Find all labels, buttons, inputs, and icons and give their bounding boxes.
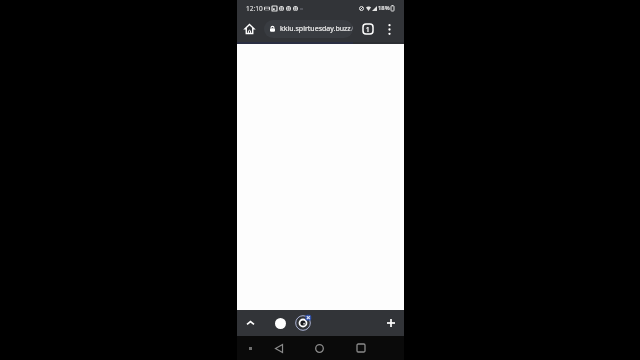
staticText: 12:10	[246, 4, 263, 13]
button[interactable]: Back	[269, 338, 289, 358]
staticText: 18%	[378, 4, 390, 12]
button[interactable]: Home	[239, 19, 259, 39]
button[interactable]: Recent apps	[351, 338, 371, 358]
button[interactable]: kkiu.spirtuesday.buzz	[264, 20, 353, 38]
button[interactable]: Home	[309, 338, 329, 358]
staticText: 1	[366, 25, 370, 33]
button[interactable]: New tab	[381, 313, 401, 333]
button[interactable]: Expand toolbar	[240, 313, 260, 333]
staticText: /t	[351, 24, 353, 34]
button[interactable]: More options	[379, 19, 399, 39]
staticText: kkiu.spirtuesday.buzz	[280, 24, 351, 34]
button[interactable]: Google Lens	[292, 312, 314, 334]
button[interactable]: Voice search	[270, 313, 290, 333]
button[interactable]: Tabs	[358, 19, 378, 39]
